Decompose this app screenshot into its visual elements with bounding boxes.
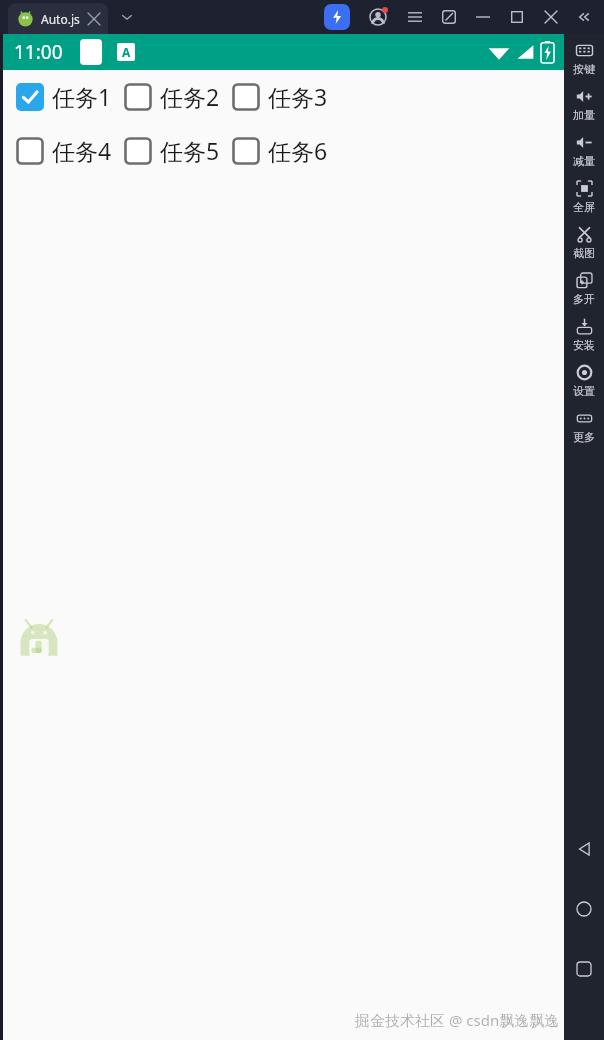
button[interactable]: Close tab — [86, 11, 102, 27]
button[interactable]: 任务6 — [232, 135, 328, 166]
staticText: Auto.js — [41, 11, 80, 27]
button[interactable]: Collapse — [568, 0, 602, 34]
button[interactable]: Menu — [398, 0, 432, 34]
button[interactable]: 加量 — [564, 86, 604, 122]
staticText: 设置 — [573, 384, 595, 398]
staticText: 安装 — [573, 338, 595, 352]
button[interactable]: Back — [567, 832, 601, 866]
button[interactable]: Account — [364, 3, 392, 31]
staticText: A — [122, 44, 131, 60]
button[interactable]: Home — [567, 892, 601, 926]
button[interactable]: 任务2 — [124, 81, 220, 112]
button[interactable]: Snapshot — [432, 0, 466, 34]
staticText: 任务6 — [268, 135, 328, 166]
button[interactable]: 按键 — [564, 40, 604, 76]
button[interactable]: 任务5 — [124, 135, 220, 166]
button[interactable]: 更多 — [564, 408, 604, 444]
button[interactable]: 全屏 — [564, 178, 604, 214]
button[interactable]: Tab list — [110, 0, 144, 34]
button[interactable]: 任务4 — [16, 135, 112, 166]
button[interactable]: Maximize — [500, 0, 534, 34]
button[interactable]: 任务3 — [232, 81, 328, 112]
staticText: 按键 — [573, 62, 595, 76]
staticText: 掘金技术社区 @ csdn飘逸飘逸 — [355, 1010, 560, 1030]
button[interactable]: 安装 — [564, 316, 604, 352]
staticText: 任务5 — [160, 135, 220, 166]
staticText: 截图 — [573, 246, 595, 260]
staticText: 减量 — [573, 154, 595, 168]
staticText: 加量 — [573, 108, 595, 122]
button[interactable]: Minimize — [466, 0, 500, 34]
staticText: 任务4 — [52, 135, 112, 166]
button[interactable]: 减量 — [564, 132, 604, 168]
button[interactable]: 任务1 — [16, 81, 112, 112]
staticText: 全屏 — [573, 200, 595, 214]
button[interactable]: 截图 — [564, 224, 604, 260]
button[interactable]: Close — [534, 0, 568, 34]
staticText: 任务2 — [160, 81, 220, 112]
staticText: 任务3 — [268, 81, 328, 112]
staticText: 多开 — [573, 292, 595, 306]
button[interactable]: Recents — [567, 952, 601, 986]
staticText: 更多 — [573, 430, 595, 444]
button[interactable]: Auto.js — [8, 3, 108, 34]
staticText: 11:00 — [14, 39, 63, 65]
button[interactable]: 多开 — [564, 270, 604, 306]
button[interactable]: Boost — [324, 4, 350, 30]
staticText: 任务1 — [52, 81, 112, 112]
button[interactable]: 设置 — [564, 362, 604, 398]
